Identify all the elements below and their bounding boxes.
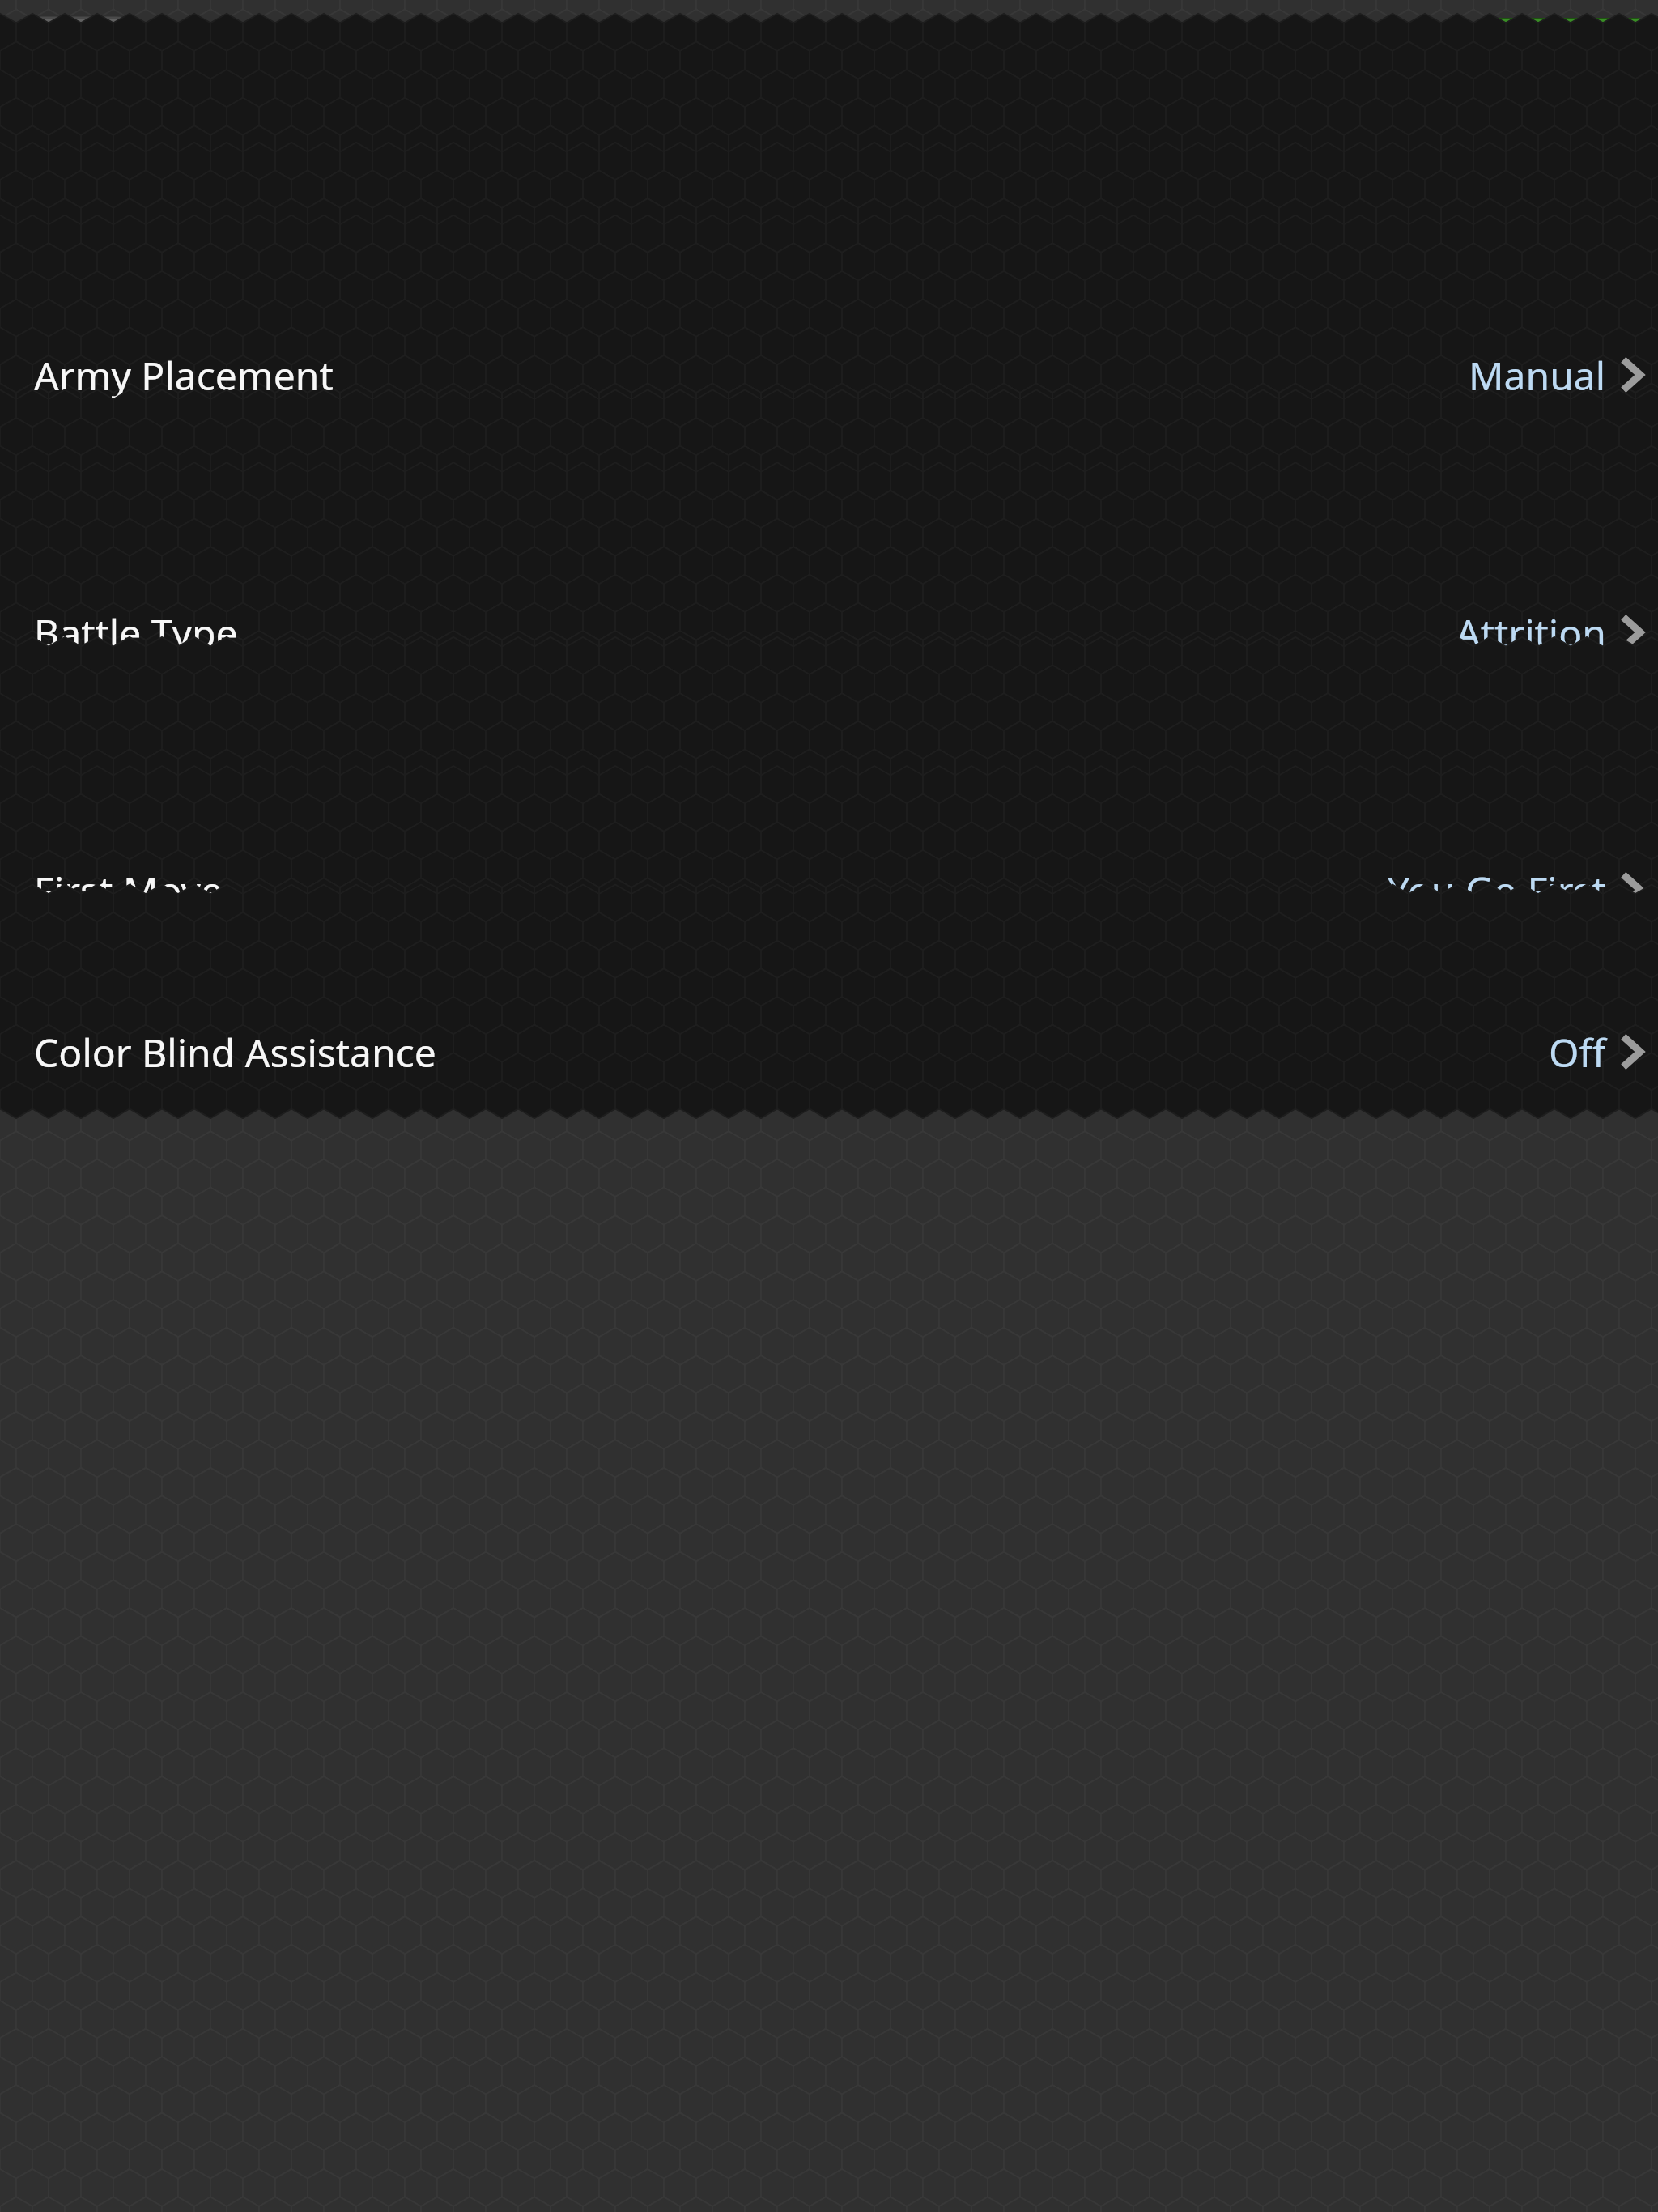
button[interactable]: Back <box>11 18 133 79</box>
staticText: Army Placement <box>34 349 334 402</box>
button[interactable]: Battle Type <box>0 585 1658 680</box>
staticText: Manual <box>1469 349 1606 402</box>
staticText: Battle Type <box>34 606 238 659</box>
staticText: You Go First <box>1388 864 1606 917</box>
staticText: Attrition <box>1456 606 1606 659</box>
button[interactable]: First Move <box>0 842 1658 938</box>
button[interactable]: Army Placement <box>0 327 1658 423</box>
button[interactable]: Color Blind Assistance <box>0 1004 1658 1100</box>
staticText: Color Blind Assistance <box>34 1026 436 1078</box>
staticText: Off <box>1549 1026 1606 1078</box>
button[interactable]: Continue <box>1482 18 1647 79</box>
other: Back <box>0 0 121 62</box>
staticText: First Move <box>34 864 223 917</box>
